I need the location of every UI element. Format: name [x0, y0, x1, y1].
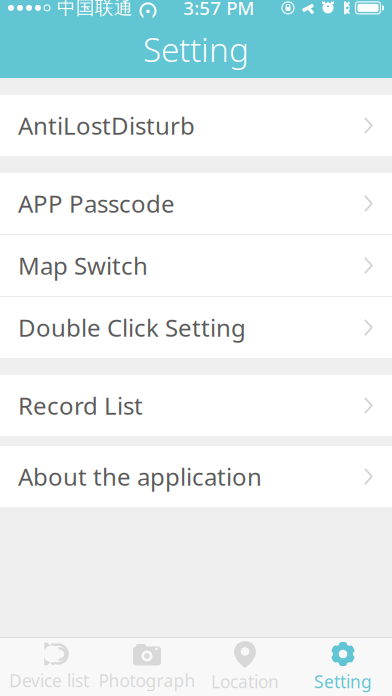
- staticText: Device list: [9, 669, 89, 692]
- staticText: Setting: [143, 27, 249, 71]
- staticText: Location: [211, 670, 279, 693]
- button[interactable]: Photograph: [98, 638, 196, 696]
- staticText: Record List: [18, 390, 143, 421]
- button[interactable]: Map Switch: [0, 235, 392, 296]
- button[interactable]: Device list: [0, 638, 98, 696]
- button[interactable]: Double Click Setting: [0, 297, 392, 358]
- staticText: About the application: [18, 461, 262, 492]
- button[interactable]: About the application: [0, 446, 392, 507]
- staticText: Double Click Setting: [18, 312, 246, 343]
- staticText: 中国联通: [57, 0, 133, 19]
- button[interactable]: Setting: [294, 638, 392, 696]
- staticText: 3:57 PM: [183, 0, 254, 20]
- button[interactable]: Location: [196, 638, 294, 696]
- staticText: AntiLostDisturb: [18, 110, 195, 141]
- staticText: Photograph: [98, 669, 195, 692]
- button[interactable]: APP Passcode: [0, 173, 392, 234]
- button[interactable]: AntiLostDisturb: [0, 95, 392, 156]
- button[interactable]: Record List: [0, 375, 392, 436]
- staticText: Setting: [314, 670, 372, 693]
- staticText: Map Switch: [18, 250, 148, 281]
- staticText: APP Passcode: [18, 188, 175, 219]
